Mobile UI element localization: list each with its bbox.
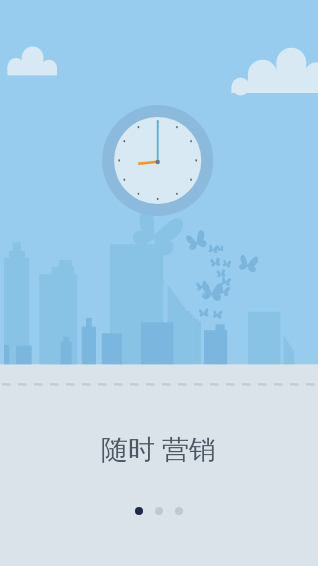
- button[interactable]: [135, 507, 143, 515]
- staticText: 随时 营销: [101, 430, 217, 467]
- button[interactable]: [175, 507, 183, 515]
- button[interactable]: [155, 507, 163, 515]
